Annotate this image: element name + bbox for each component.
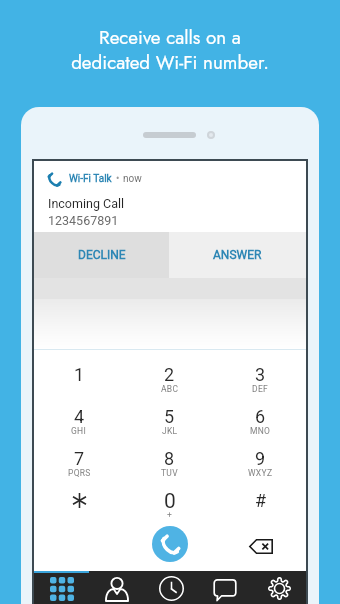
button[interactable]: 3 xyxy=(215,357,306,399)
staticText: Incoming Call xyxy=(48,196,125,211)
staticText: • xyxy=(116,173,120,185)
staticText: 3 xyxy=(255,364,266,385)
staticText: ABC xyxy=(161,384,179,394)
staticText: + xyxy=(167,510,173,520)
button[interactable]: Settings xyxy=(252,571,306,604)
staticText: dedicated Wi-Fi number. xyxy=(0,49,340,76)
staticText: 1234567891 xyxy=(48,213,119,228)
button[interactable] xyxy=(34,483,124,525)
button[interactable]: # xyxy=(215,483,306,525)
staticText: GHI xyxy=(71,426,87,436)
staticText: PQRS xyxy=(68,468,91,478)
staticText: WXYZ xyxy=(248,468,273,478)
button[interactable]: Contacts xyxy=(89,571,144,604)
button[interactable]: Dialpad xyxy=(34,571,89,604)
button[interactable]: Messages xyxy=(198,571,252,604)
button[interactable]: ANSWER xyxy=(169,232,306,278)
button[interactable]: 8 xyxy=(124,441,215,483)
button[interactable]: 0 xyxy=(124,483,215,525)
staticText: 7 xyxy=(74,448,85,469)
staticText: DECLINE xyxy=(78,248,126,262)
button[interactable]: 4 xyxy=(34,399,124,441)
staticText: Wi-Fi Talk xyxy=(69,173,112,185)
staticText: 1 xyxy=(74,364,85,385)
button[interactable]: 7 xyxy=(34,441,124,483)
button[interactable]: Backspace xyxy=(242,528,279,565)
button[interactable]: 6 xyxy=(215,399,306,441)
staticText: Receive calls on a xyxy=(0,24,340,51)
button[interactable]: DECLINE xyxy=(34,232,169,278)
staticText: 8 xyxy=(164,448,175,469)
button[interactable]: Call xyxy=(152,526,188,562)
button[interactable]: 9 xyxy=(215,441,306,483)
staticText: DEF xyxy=(252,384,269,394)
staticText: 9 xyxy=(255,448,266,469)
staticText: 6 xyxy=(255,406,266,427)
staticText: now xyxy=(123,173,142,185)
staticText: # xyxy=(255,490,267,511)
button[interactable]: 1 xyxy=(34,357,124,399)
staticText: ANSWER xyxy=(213,248,262,262)
staticText: MNO xyxy=(250,426,271,436)
staticText: 4 xyxy=(74,406,85,427)
staticText: TUV xyxy=(161,468,178,478)
staticText: 2 xyxy=(164,364,175,385)
staticText: 0 xyxy=(164,489,176,514)
button[interactable]: 2 xyxy=(124,357,215,399)
staticText: 5 xyxy=(164,406,175,427)
staticText: JKL xyxy=(162,426,178,436)
button[interactable]: Recents xyxy=(144,571,198,604)
button[interactable]: 5 xyxy=(124,399,215,441)
